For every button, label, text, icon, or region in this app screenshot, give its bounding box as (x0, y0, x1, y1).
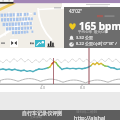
staticText: 请扫描二维码 (76, 110, 97, 114)
staticText: 全新体验 (30, 115, 42, 119)
staticText: 8.0 (80, 85, 85, 90)
button[interactable]: Map layer (35, 40, 45, 47)
staticText: 8.22 公里/小时 (7'18" /km (76, 41, 120, 48)
button[interactable]: 11 米 (64, 48, 120, 55)
staticText: http://aishal (74, 114, 106, 120)
button[interactable]: Locate (30, 42, 34, 45)
button[interactable]: Statistics (47, 40, 55, 47)
staticText: 4.0 (40, 85, 45, 90)
staticText: 43'02" (69, 8, 83, 14)
staticText: 平均心率 最大心率 (78, 29, 108, 34)
staticText: 165 bpm (79, 19, 120, 33)
staticText: 3.32 公里 (76, 35, 93, 40)
button[interactable]: 8.22 公里/小时 (7'18" /km (64, 41, 120, 48)
staticText: 自行车记录仪评测 (22, 110, 62, 116)
button[interactable]: Play track (10, 39, 18, 47)
button[interactable]: 3.32 公里 (64, 34, 120, 41)
button[interactable]: Scale (1, 41, 6, 45)
